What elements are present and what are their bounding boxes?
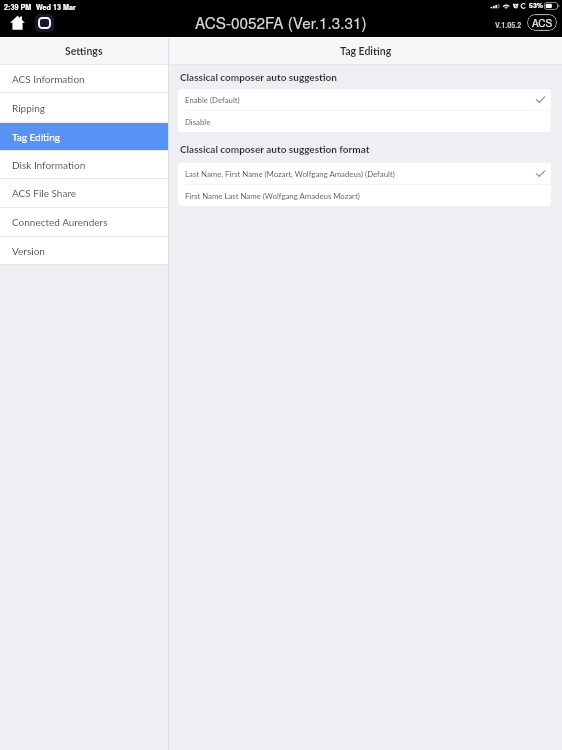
button[interactable]: App switcher xyxy=(35,14,54,32)
staticText: Classical composer auto suggestion forma… xyxy=(180,143,370,155)
button[interactable]: Version xyxy=(0,237,168,264)
staticText: Settings xyxy=(65,45,103,58)
button[interactable]: Disk Information xyxy=(0,151,168,178)
staticText: Connected Aurenders xyxy=(12,216,108,228)
staticText: Wed 13 Mar xyxy=(36,2,76,12)
staticText: First Name Last Name (Wolfgang Amadeus M… xyxy=(185,191,360,200)
staticText: ACS-0052FA (Ver.1.3.31) xyxy=(195,11,367,33)
button[interactable]: Tag Editing xyxy=(0,123,168,150)
staticText: Disable xyxy=(185,117,211,126)
staticText: V.1.05.2 xyxy=(495,20,522,30)
staticText: Enable (Default) xyxy=(185,95,240,104)
staticText: ACS Information xyxy=(12,73,85,85)
staticText: Version xyxy=(12,245,45,257)
staticText: Classical composer auto suggestion xyxy=(180,71,337,83)
staticText: ACS File Share xyxy=(12,187,77,199)
staticText: Tag Editing xyxy=(340,45,392,58)
button[interactable]: ACS xyxy=(527,14,557,31)
staticText: Ripping xyxy=(12,102,45,114)
button[interactable]: Disable xyxy=(178,111,551,132)
button[interactable]: Ripping xyxy=(0,93,168,122)
button[interactable]: ACS Information xyxy=(0,65,168,92)
staticText: Disk Information xyxy=(12,159,86,171)
staticText: 2:39 PM xyxy=(4,2,32,12)
button[interactable]: First Name Last Name (Wolfgang Amadeus M… xyxy=(178,185,551,206)
button[interactable]: Home xyxy=(10,15,25,30)
button[interactable]: Last Name, First Name (Mozart, Wolfgang … xyxy=(178,163,551,184)
button[interactable]: Connected Aurenders xyxy=(0,208,168,236)
staticText: Last Name, First Name (Mozart, Wolfgang … xyxy=(185,169,395,178)
button[interactable]: Enable (Default) xyxy=(178,89,551,110)
staticText: Tag Editing xyxy=(12,131,61,143)
button[interactable]: ACS File Share xyxy=(0,179,168,207)
staticText: 53% xyxy=(529,0,544,10)
staticText: ACS xyxy=(532,16,553,30)
